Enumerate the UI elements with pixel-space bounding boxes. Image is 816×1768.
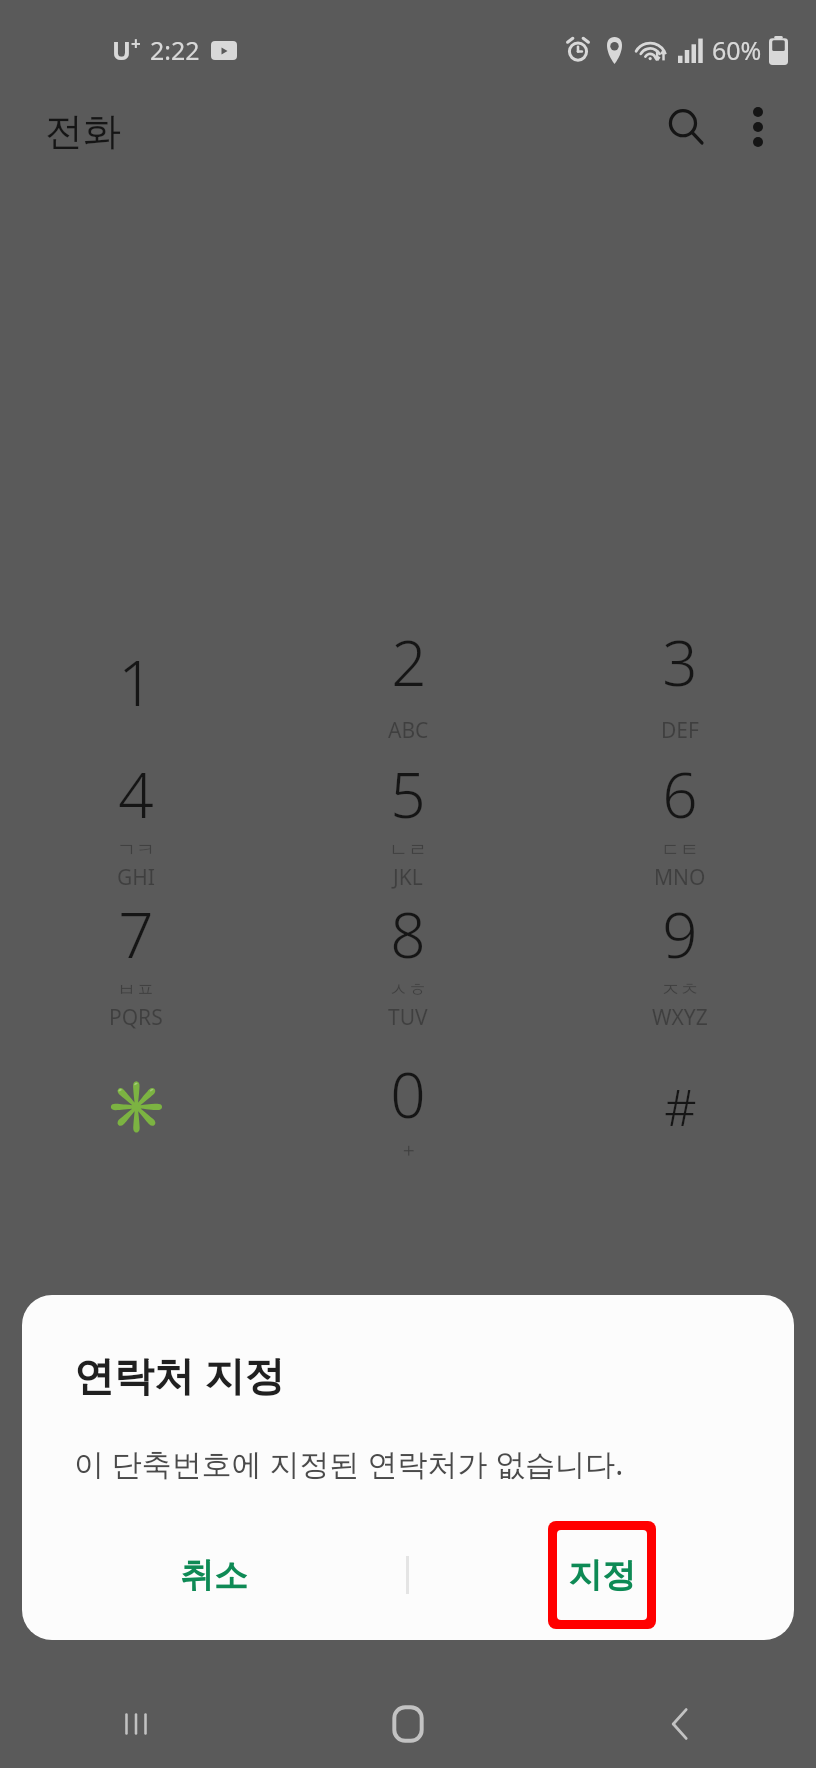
button[interactable]: 2 [272, 612, 544, 752]
button[interactable]: # [544, 1032, 816, 1182]
staticText: 이 단축번호에 지정된 연락처가 없습니다. [74, 1443, 624, 1484]
staticText: 9 [662, 892, 698, 976]
staticText: + [131, 32, 141, 55]
staticText: 2:22 [150, 33, 200, 67]
staticText: ABC [388, 716, 429, 745]
staticText: U [112, 33, 131, 67]
button[interactable]: Search [650, 91, 722, 163]
staticText: 7 [118, 892, 154, 976]
button[interactable]: More options [722, 91, 794, 163]
staticText: 2 [391, 620, 427, 704]
button[interactable]: 6 [544, 752, 816, 892]
staticText: JKL [393, 863, 423, 892]
staticText: GHI [117, 863, 155, 892]
staticText: MNO [654, 863, 706, 892]
staticText: 취소 [180, 1554, 248, 1597]
button[interactable]: 7 [0, 892, 272, 1032]
staticText: ㄴㄹ [389, 838, 427, 862]
button[interactable]: 5 [272, 752, 544, 892]
staticText: 연락처 지정 [74, 1347, 285, 1402]
button[interactable]: 1 [0, 612, 272, 752]
staticText: ㅂㅍ [117, 978, 155, 1002]
staticText: ＋ [399, 1138, 418, 1162]
button[interactable]: Back [544, 1680, 816, 1768]
staticText: 4 [118, 752, 154, 836]
button[interactable]: Home [272, 1680, 544, 1768]
button[interactable]: Recents [0, 1680, 272, 1768]
staticText: ㅅㅎ [389, 978, 427, 1002]
staticText: 지정 [568, 1554, 636, 1597]
staticText: TUV [388, 1003, 428, 1032]
button[interactable]: 취소 [22, 1510, 406, 1640]
button[interactable]: 8 [272, 892, 544, 1032]
staticText: PQRS [109, 1003, 163, 1032]
staticText: ㄱㅋ [117, 838, 155, 862]
staticText: ㄷㅌ [661, 838, 699, 862]
button[interactable]: 9 [544, 892, 816, 1032]
staticText: 5 [390, 752, 426, 836]
button[interactable]: 4 [0, 752, 272, 892]
staticText: ✳ [105, 1078, 168, 1137]
staticText: DEF [661, 716, 699, 745]
staticText: 60% [712, 33, 762, 67]
button[interactable]: ✳ [0, 1032, 272, 1182]
button[interactable]: 지정 [409, 1510, 794, 1640]
staticText: 1 [118, 640, 154, 724]
button[interactable]: 0 [272, 1032, 544, 1182]
staticText: WXYZ [652, 1003, 708, 1032]
staticText: 전화 [45, 107, 121, 155]
staticText: 3 [662, 620, 698, 704]
staticText: 8 [390, 892, 426, 976]
button[interactable]: 3 [544, 612, 816, 752]
staticText: 6 [662, 752, 698, 836]
staticText: # [664, 1073, 697, 1141]
staticText: ㅈㅊ [661, 978, 699, 1002]
staticText: 0 [390, 1052, 426, 1136]
